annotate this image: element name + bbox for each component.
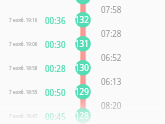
staticText: 132 [75, 14, 89, 25]
staticText: 00:28 [45, 63, 66, 74]
staticText: 131 [75, 38, 89, 49]
button[interactable]: 7 нояб. 19:16 [0, 13, 165, 27]
staticText: 06:52 [101, 52, 122, 63]
staticText: 129 [75, 86, 89, 97]
staticText: 128 [75, 110, 89, 121]
button[interactable]: 7 нояб. 19:06 [0, 37, 165, 51]
button[interactable]: 7 нояб. 18:58 [0, 61, 165, 75]
staticText: 7 нояб. 18:47 [9, 113, 38, 119]
staticText: 00:36 [45, 15, 66, 26]
staticText: 00:50 [45, 87, 66, 98]
staticText: 07:28 [101, 28, 122, 39]
staticText: 7 нояб. 19:06 [9, 41, 38, 47]
button[interactable]: 7 нояб. 18:47 [0, 109, 165, 123]
staticText: 00:30 [45, 39, 66, 50]
staticText: 7 нояб. 19:16 [9, 17, 38, 23]
staticText: 07:58 [101, 4, 122, 15]
staticText: 06:13 [101, 76, 122, 87]
button[interactable]: 7 нояб. 18:55 [0, 85, 165, 99]
staticText: 7 нояб. 18:55 [9, 89, 38, 95]
staticText: 130 [75, 62, 89, 73]
staticText: 00:45 [45, 111, 66, 122]
staticText: 08:20 [101, 100, 122, 111]
staticText: 7 нояб. 18:58 [9, 65, 38, 71]
